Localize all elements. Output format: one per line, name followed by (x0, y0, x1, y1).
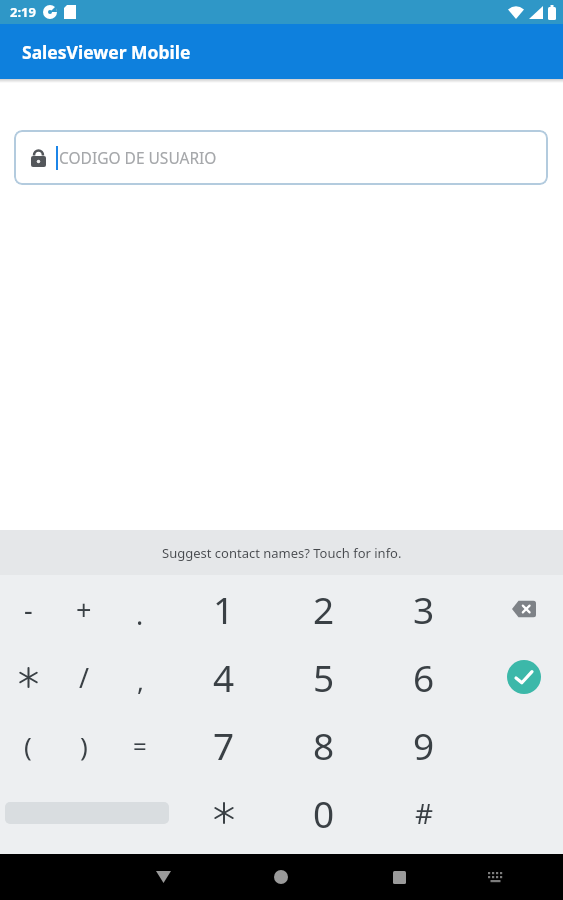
button[interactable] (0, 643, 56, 711)
staticText: + (76, 591, 92, 628)
button[interactable]: 4 (174, 643, 274, 711)
button[interactable]: 2 (274, 575, 374, 643)
staticText: / (79, 659, 90, 696)
staticText: 3 (413, 584, 435, 634)
button[interactable] (141, 855, 185, 899)
staticText: - (24, 591, 33, 628)
staticText: # (415, 794, 434, 832)
staticText: ( (24, 728, 32, 763)
button[interactable]: # (374, 779, 474, 847)
button[interactable]: 7 (174, 711, 274, 779)
staticText: 9 (413, 720, 435, 770)
staticText: 0 (313, 788, 335, 838)
staticText: = (133, 729, 147, 762)
staticText: 2:19 (10, 3, 36, 21)
staticText: , (137, 663, 144, 698)
button[interactable]: + (56, 575, 112, 643)
button[interactable]: - (0, 575, 56, 643)
staticText: 7 (213, 720, 235, 770)
staticText: 6 (413, 652, 435, 702)
staticText: SalesViewer Mobile (22, 40, 191, 64)
button[interactable] (377, 855, 421, 899)
button[interactable]: ( (0, 711, 56, 779)
button[interactable]: CODIGO DE USUARIO (14, 130, 548, 185)
button[interactable]: 0 (274, 779, 374, 847)
staticText: . (136, 596, 144, 633)
button[interactable] (474, 643, 563, 711)
button[interactable]: = (112, 711, 168, 779)
button[interactable]: / (56, 643, 112, 711)
button[interactable]: 1 (174, 575, 274, 643)
staticText: 1 (213, 584, 235, 634)
button[interactable]: 6 (374, 643, 474, 711)
staticText: 2 (313, 584, 335, 634)
button[interactable]: 9 (374, 711, 474, 779)
button[interactable]: 3 (374, 575, 474, 643)
button[interactable] (0, 779, 174, 847)
button[interactable]: . (112, 575, 168, 643)
button[interactable]: 5 (274, 643, 374, 711)
button[interactable] (259, 855, 303, 899)
staticText: 5 (313, 652, 335, 702)
button[interactable] (507, 660, 541, 694)
button[interactable]: 8 (274, 711, 374, 779)
staticText: 4 (213, 652, 235, 702)
button[interactable]: , (112, 643, 168, 711)
button[interactable] (474, 856, 516, 898)
staticText: ) (80, 728, 88, 763)
staticText: 8 (313, 720, 335, 770)
button[interactable] (474, 575, 563, 643)
button[interactable] (174, 779, 274, 847)
staticText: Suggest contact names? Touch for info. (162, 544, 402, 562)
button[interactable]: Suggest contact names? Touch for info. (0, 530, 563, 575)
staticText: CODIGO DE USUARIO (59, 147, 217, 168)
button[interactable]: ) (56, 711, 112, 779)
